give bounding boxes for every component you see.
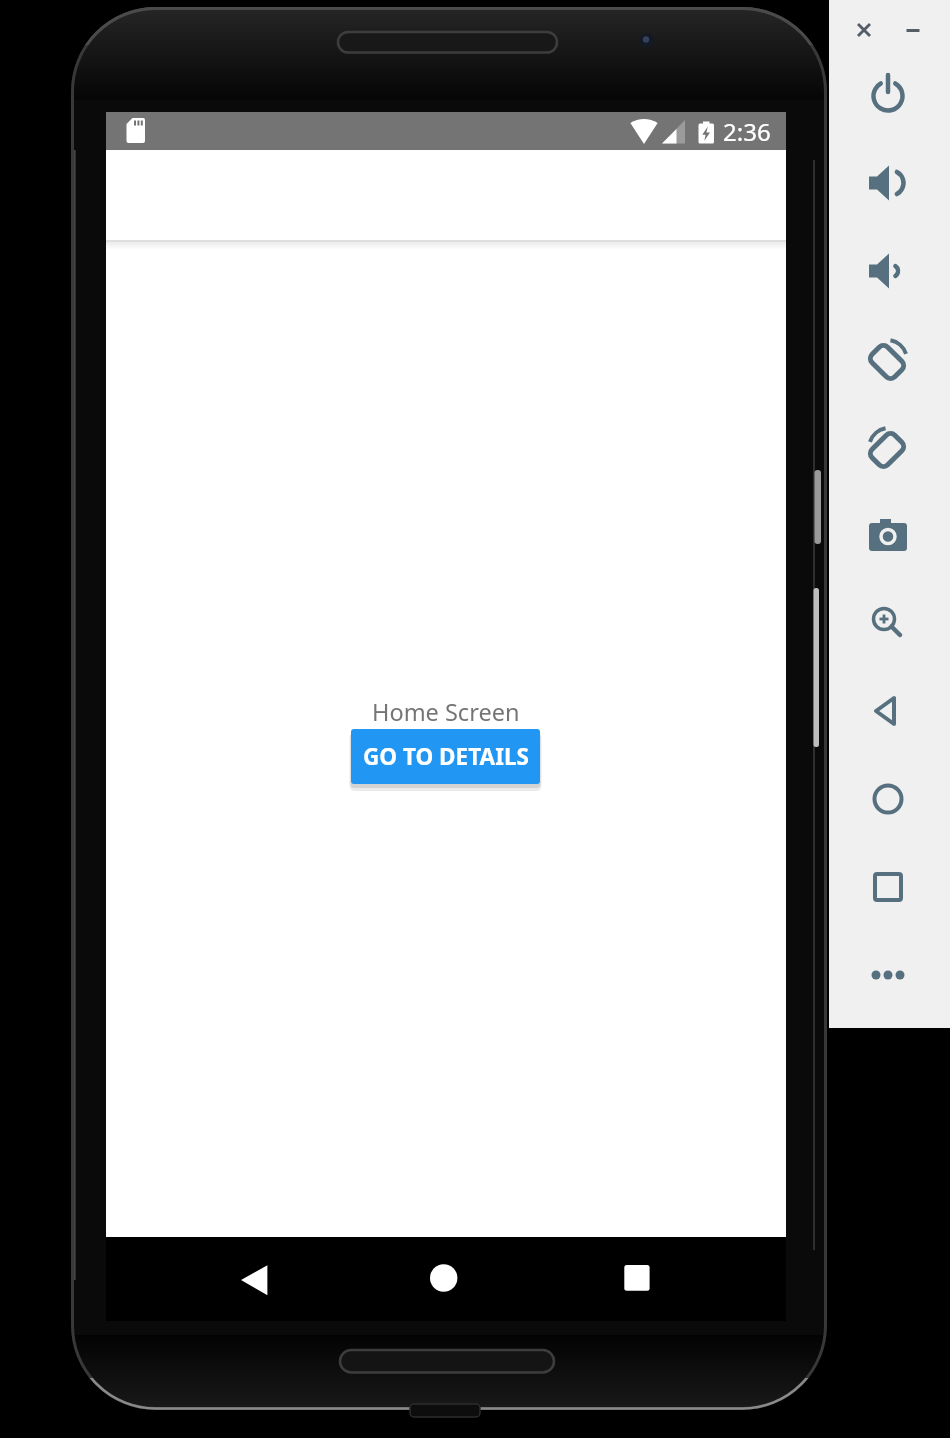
button[interactable] [864,599,912,647]
button[interactable] [232,1258,276,1302]
button[interactable] [864,687,912,735]
staticText: Home Screen [372,696,520,728]
button[interactable] [864,863,912,911]
button[interactable] [864,71,912,119]
staticText: 2:36 [723,115,771,148]
button[interactable] [421,1256,465,1300]
button[interactable] [864,159,912,207]
button[interactable]: GO TO DETAILS [351,729,540,784]
button[interactable] [864,423,912,471]
staticText: GO TO DETAILS [363,741,529,772]
button[interactable] [864,511,912,559]
button[interactable] [864,247,912,295]
button[interactable] [615,1256,659,1300]
button[interactable] [864,335,912,383]
button[interactable] [901,18,925,42]
button[interactable] [864,775,912,823]
button[interactable] [852,18,876,42]
button[interactable] [864,951,912,999]
